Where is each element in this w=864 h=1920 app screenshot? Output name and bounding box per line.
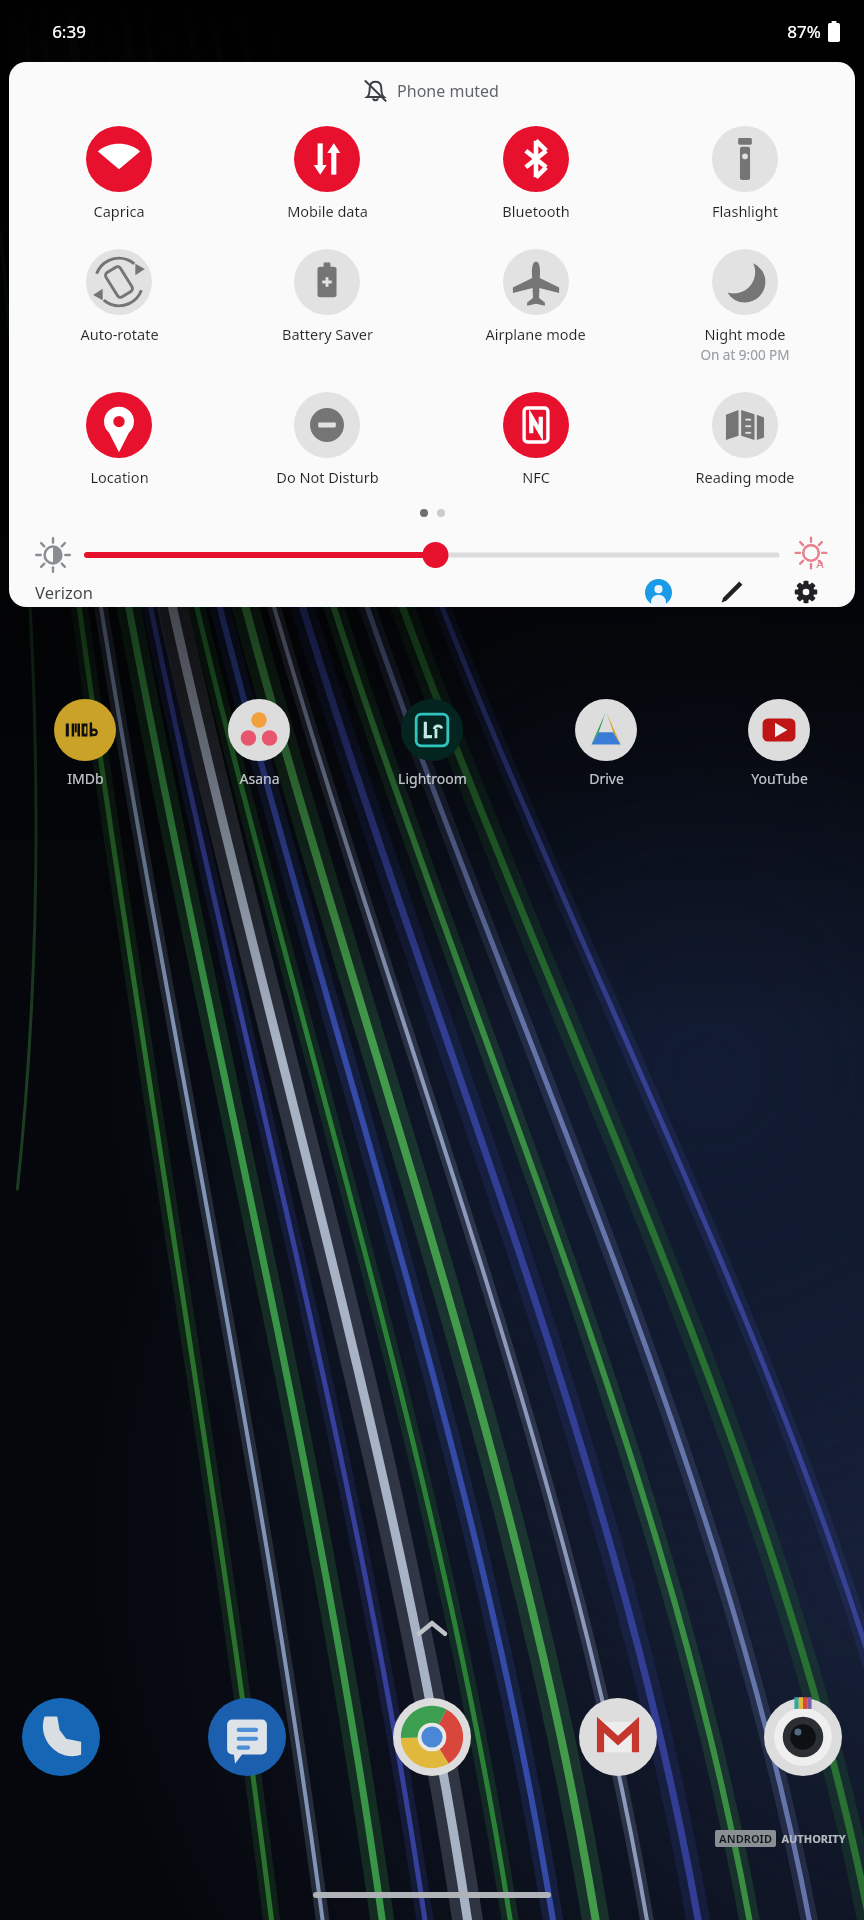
staticText: AUTHORITY [781,1831,846,1846]
staticText: NFC [522,467,550,487]
button[interactable]: Messages [204,1694,290,1780]
button[interactable]: Airplane mode [431,247,640,346]
button[interactable]: Bluetooth [431,124,640,223]
staticText: Asana [239,769,280,788]
button[interactable]: User account [635,577,681,607]
button[interactable]: Auto brightness [789,533,833,577]
button[interactable]: Edit tiles [709,577,755,607]
staticText: Caprica [93,201,145,221]
button[interactable]: Gmail [575,1694,661,1780]
button[interactable]: Low brightness [31,533,75,577]
staticText: Phone muted [397,80,499,102]
staticText: Reading mode [695,467,795,487]
button[interactable]: Brightness slider [87,535,777,575]
staticText: IMDb [67,769,104,788]
staticText: Auto-rotate [80,324,159,344]
staticText: A [816,556,824,571]
button[interactable]: Phone [18,1694,104,1780]
button[interactable]: Night mode [640,247,849,366]
button[interactable]: Asana [184,699,334,788]
staticText: Night mode [704,324,786,344]
button[interactable]: YouTube [704,699,854,788]
staticText: Flashlight [712,201,778,221]
staticText: Battery Saver [282,324,373,344]
staticText: Bluetooth [502,201,570,221]
button[interactable]: Phone muted [9,80,855,102]
staticText: Lightroom [398,769,467,788]
button[interactable]: Location [15,390,223,489]
staticText: Mobile data [287,201,368,221]
button[interactable]: NFC [431,390,640,489]
button[interactable]: Caprica [15,124,223,223]
staticText: Location [90,467,149,487]
staticText: Drive [589,769,624,788]
staticText: 6:39 [52,20,86,43]
button[interactable]: Flashlight [640,124,849,223]
staticText: Do Not Disturb [276,467,379,487]
button[interactable]: Settings [783,577,829,607]
button[interactable]: Do Not Disturb [223,390,431,489]
button[interactable]: Battery Saver [223,247,431,346]
button[interactable]: Lightroom [357,699,507,788]
button[interactable]: Auto-rotate [15,247,223,346]
staticText: Verizon [35,581,93,603]
staticText: 87% [787,20,821,43]
staticText: ANDROID [719,1831,772,1846]
staticText: YouTube [751,769,808,788]
button[interactable]: Drive [531,699,681,788]
button[interactable]: Chrome [389,1694,475,1780]
staticText: On at 9:00 PM [700,346,790,364]
staticText: Airplane mode [485,324,586,344]
button[interactable]: Camera [760,1694,846,1780]
button[interactable]: Mobile data [223,124,431,223]
button[interactable]: Reading mode [640,390,849,489]
button[interactable]: IMDb [10,699,160,788]
